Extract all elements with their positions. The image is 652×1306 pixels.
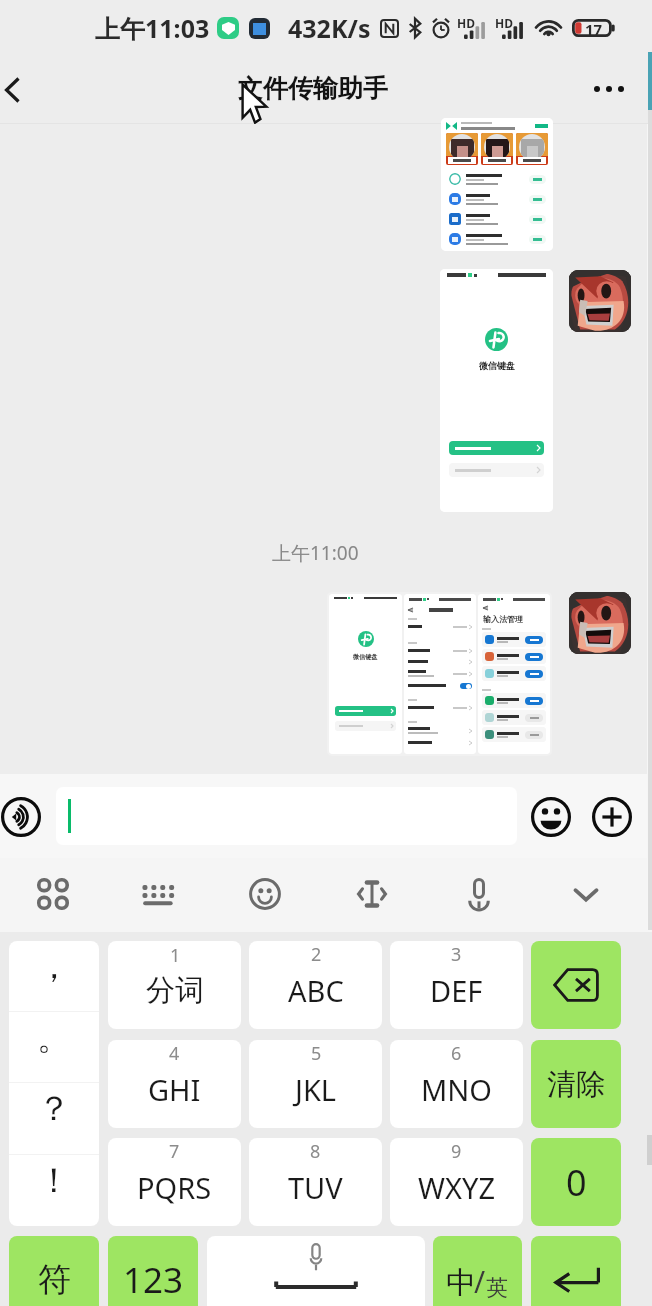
button[interactable] bbox=[207, 1236, 425, 1306]
button[interactable]: ！ bbox=[9, 1155, 99, 1226]
staticText: 清除 bbox=[547, 1066, 605, 1103]
staticText: 微信键盘 bbox=[353, 653, 378, 661]
staticText: 文件传输助手 bbox=[238, 73, 388, 104]
staticText: JKL bbox=[295, 1070, 337, 1109]
staticText: TUV bbox=[288, 1168, 343, 1207]
button[interactable]: Back bbox=[0, 55, 26, 124]
staticText: 17 bbox=[585, 19, 603, 37]
staticText: 1 bbox=[170, 943, 181, 968]
button[interactable]: 0 bbox=[531, 1138, 621, 1226]
staticText: HD bbox=[495, 15, 513, 31]
button[interactable]: Collapse keyboard bbox=[532, 858, 639, 932]
staticText: 432K/s bbox=[288, 11, 371, 45]
staticText: 。 bbox=[37, 1016, 71, 1059]
button[interactable]: 6 bbox=[390, 1040, 523, 1128]
staticText: 3 bbox=[451, 942, 462, 967]
staticText: 7 bbox=[169, 1139, 180, 1164]
staticText: MNO bbox=[421, 1070, 492, 1109]
button[interactable]: More bbox=[591, 796, 633, 838]
staticText: 2 bbox=[311, 942, 322, 967]
staticText: 中 bbox=[446, 1264, 476, 1302]
staticText: ABC bbox=[288, 971, 344, 1010]
button[interactable]: 微信键盘 bbox=[440, 269, 553, 512]
staticText: 8 bbox=[310, 1139, 321, 1164]
button[interactable]: Emoji bbox=[212, 858, 318, 932]
button[interactable] bbox=[56, 787, 517, 845]
button[interactable]: 9 bbox=[390, 1138, 523, 1226]
staticText: ？ bbox=[37, 1087, 71, 1130]
button[interactable]: 中 bbox=[433, 1236, 522, 1306]
button[interactable] bbox=[441, 118, 553, 251]
staticText: ， bbox=[37, 945, 71, 988]
button[interactable]: Voice input bbox=[0, 796, 42, 838]
staticText: ！ bbox=[37, 1159, 71, 1202]
staticText: WXYZ bbox=[418, 1168, 495, 1207]
button[interactable]: 2 bbox=[249, 941, 382, 1029]
button[interactable]: 3 bbox=[390, 941, 523, 1029]
staticText: 123 bbox=[123, 1256, 184, 1304]
staticText: GHI bbox=[148, 1070, 201, 1109]
button[interactable]: 8 bbox=[249, 1138, 382, 1226]
staticText: 上午11:03 bbox=[95, 11, 210, 45]
button[interactable]: 5 bbox=[249, 1040, 382, 1128]
staticText: 上午11:00 bbox=[272, 540, 359, 566]
staticText: / bbox=[474, 1261, 486, 1302]
button[interactable]: Apps bbox=[0, 858, 106, 932]
button[interactable]: 微信键盘 bbox=[327, 592, 552, 756]
staticText: 符 bbox=[38, 1259, 71, 1301]
button[interactable]: 。 bbox=[9, 1012, 99, 1082]
button[interactable] bbox=[531, 1236, 621, 1306]
staticText: 9 bbox=[451, 1139, 462, 1164]
staticText: 分词 bbox=[146, 972, 204, 1009]
staticText: DEF bbox=[430, 971, 483, 1010]
staticText: HD bbox=[457, 15, 475, 31]
button[interactable]: Text cursor bbox=[318, 858, 425, 932]
button[interactable] bbox=[531, 941, 621, 1029]
button[interactable]: 123 bbox=[108, 1236, 198, 1306]
button[interactable]: ， bbox=[9, 941, 99, 1011]
button[interactable] bbox=[569, 592, 631, 654]
staticText: 6 bbox=[451, 1041, 462, 1066]
button[interactable]: Voice input bbox=[425, 858, 532, 932]
button[interactable]: 4 bbox=[108, 1040, 241, 1128]
staticText: PQRS bbox=[137, 1168, 212, 1207]
staticText: 5 bbox=[311, 1041, 322, 1066]
staticText: 英 bbox=[486, 1274, 508, 1302]
button[interactable]: More options bbox=[592, 55, 652, 124]
button[interactable]: 清除 bbox=[531, 1040, 621, 1128]
button[interactable]: Emoji bbox=[530, 796, 572, 838]
button[interactable]: 符 bbox=[9, 1236, 99, 1306]
button[interactable]: Keyboard bbox=[106, 858, 212, 932]
button[interactable] bbox=[569, 270, 631, 332]
button[interactable]: 7 bbox=[108, 1138, 241, 1226]
staticText: 输入法管理 bbox=[483, 614, 523, 624]
staticText: 0 bbox=[566, 1158, 587, 1207]
button[interactable]: ？ bbox=[9, 1083, 99, 1154]
staticText: 微信键盘 bbox=[479, 360, 515, 371]
button[interactable]: 1 bbox=[108, 941, 241, 1029]
staticText: 4 bbox=[169, 1041, 180, 1066]
